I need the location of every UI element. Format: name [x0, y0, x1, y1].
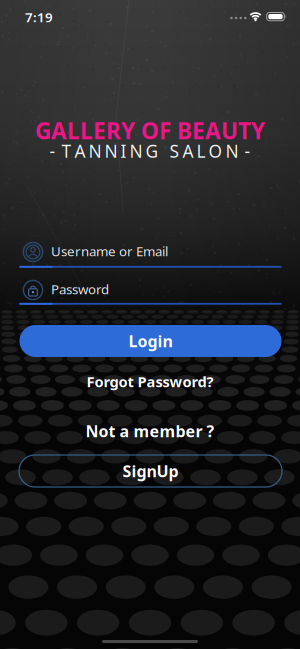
staticText: Not a member ?	[85, 420, 214, 442]
staticText: 7:19	[25, 8, 53, 26]
staticText: Username or Email	[51, 242, 168, 260]
staticText: - T A N N I N G S A L O N -	[49, 139, 250, 162]
button[interactable]: Username or Email	[19, 237, 281, 264]
staticText: Login	[128, 330, 172, 352]
staticText: SignUp	[122, 460, 178, 482]
staticText: GALLERY OF BEAUTY	[35, 115, 265, 145]
button[interactable]: Forgot Password?	[86, 372, 213, 391]
button[interactable]: Password	[19, 275, 281, 302]
button[interactable]: Login	[19, 325, 281, 357]
button[interactable]: SignUp	[19, 455, 282, 487]
staticText: Password	[51, 280, 109, 298]
staticText: Forgot Password?	[86, 372, 213, 391]
